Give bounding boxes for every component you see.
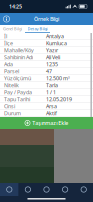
staticText: 47 — [46, 68, 52, 75]
staticText: 12.05.2019 — [46, 96, 72, 103]
staticText: Yazır — [46, 47, 58, 54]
button[interactable]: Detay Bilgi — [25, 25, 50, 33]
staticText: Aktif — [46, 110, 57, 117]
staticText: İlçe — [4, 40, 13, 47]
button[interactable]: Ekle — [37, 183, 56, 196]
button[interactable]: Bilgi — [0, 13, 13, 25]
staticText: Arsa — [46, 103, 57, 110]
staticText: Tarla — [46, 82, 58, 89]
staticText: Genel Bilgi — [3, 26, 22, 31]
staticText: Durum — [4, 110, 21, 117]
staticText: Taşınmazı Ekle — [32, 119, 68, 127]
staticText: Parsel — [4, 68, 19, 75]
staticText: 12.500 m² — [46, 75, 70, 82]
staticText: Nitelik — [4, 82, 19, 89]
button[interactable]: Profil — [74, 183, 93, 196]
staticText: Örnek Bilgi — [34, 15, 59, 23]
staticText: Tapu Tarihi — [4, 96, 30, 103]
staticText: Ali Veli — [46, 54, 60, 61]
button[interactable]: Taşınmazı Ekle — [0, 117, 93, 129]
staticText: İl — [4, 33, 7, 40]
button[interactable]: Arazi — [19, 183, 37, 196]
staticText: Ada — [4, 61, 13, 68]
button[interactable]: Harita — [0, 183, 19, 196]
staticText: Cinsi — [4, 103, 15, 110]
button[interactable]: Genel Bilgi — [0, 25, 25, 33]
staticText: Yüzölçümü — [4, 75, 31, 82]
button[interactable]: Rapor — [56, 183, 74, 196]
staticText: Mahalle/Köy — [4, 47, 34, 54]
staticText: Sahibinin Adı — [4, 54, 33, 61]
staticText: Antalya — [46, 33, 64, 40]
staticText: 14:25 — [9, 3, 22, 10]
staticText: Detay Bilgi — [27, 26, 47, 31]
staticText: Kumluca — [46, 40, 67, 47]
staticText: 1235 — [46, 61, 58, 68]
staticText: Pay / Payda — [4, 89, 32, 96]
staticText: 1 / 1 — [46, 89, 56, 96]
